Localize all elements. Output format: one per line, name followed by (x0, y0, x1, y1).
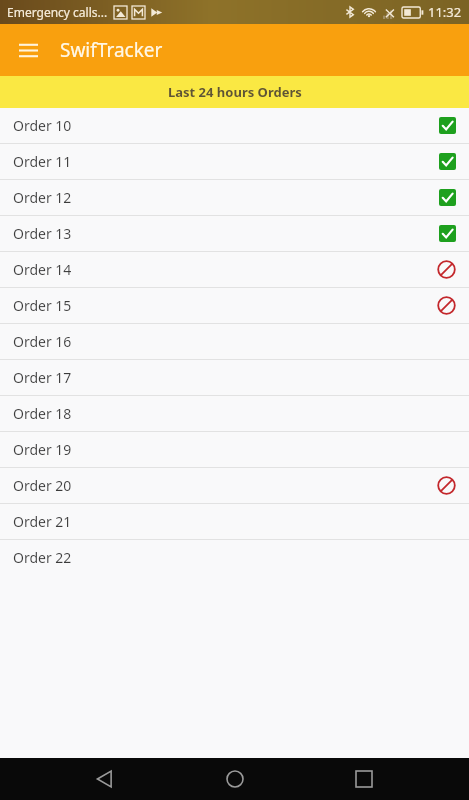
button[interactable]: Order 22 (0, 540, 469, 575)
staticText: Order 22 (13, 548, 72, 567)
staticText: Last 24 hours Orders (168, 83, 302, 101)
staticText: Order 21 (13, 512, 72, 531)
button[interactable]: Order 18 (0, 396, 469, 431)
other: Delivered (439, 189, 456, 206)
other: Delivered (439, 153, 456, 170)
button[interactable]: Order 11 (0, 144, 469, 179)
other: Cancelled (437, 476, 456, 495)
staticText: Order 17 (13, 368, 72, 387)
staticText: Emergency calls... (7, 4, 108, 20)
other: Cancelled (437, 260, 456, 279)
button[interactable]: Order 21 (0, 504, 469, 539)
button[interactable]: Home (211, 758, 259, 800)
other: Delivered (439, 117, 456, 134)
staticText: Order 11 (13, 152, 72, 171)
other: Cancelled (437, 296, 456, 315)
staticText: SwifTracker (60, 37, 163, 63)
button[interactable]: Order 13 (0, 216, 469, 251)
button[interactable]: Open navigation menu (9, 31, 47, 69)
staticText: Order 14 (13, 260, 72, 279)
button[interactable]: Order 19 (0, 432, 469, 467)
button[interactable]: Order 15 (0, 288, 469, 323)
button[interactable]: Order 17 (0, 360, 469, 395)
staticText: Order 19 (13, 440, 72, 459)
staticText: Order 15 (13, 296, 72, 315)
button[interactable]: Order 10 (0, 108, 469, 143)
staticText: Order 13 (13, 224, 72, 243)
other: Delivered (439, 225, 456, 242)
button[interactable]: Order 14 (0, 252, 469, 287)
staticText: 11:32 (428, 3, 462, 21)
button[interactable]: Order 20 (0, 468, 469, 503)
button[interactable]: Order 16 (0, 324, 469, 359)
button[interactable]: Order 12 (0, 180, 469, 215)
staticText: Order 12 (13, 188, 72, 207)
button[interactable]: Back (81, 758, 129, 800)
staticText: Order 18 (13, 404, 72, 423)
staticText: Order 20 (13, 476, 72, 495)
staticText: Order 10 (13, 116, 72, 135)
button[interactable]: Recent apps (340, 758, 388, 800)
staticText: Order 16 (13, 332, 72, 351)
